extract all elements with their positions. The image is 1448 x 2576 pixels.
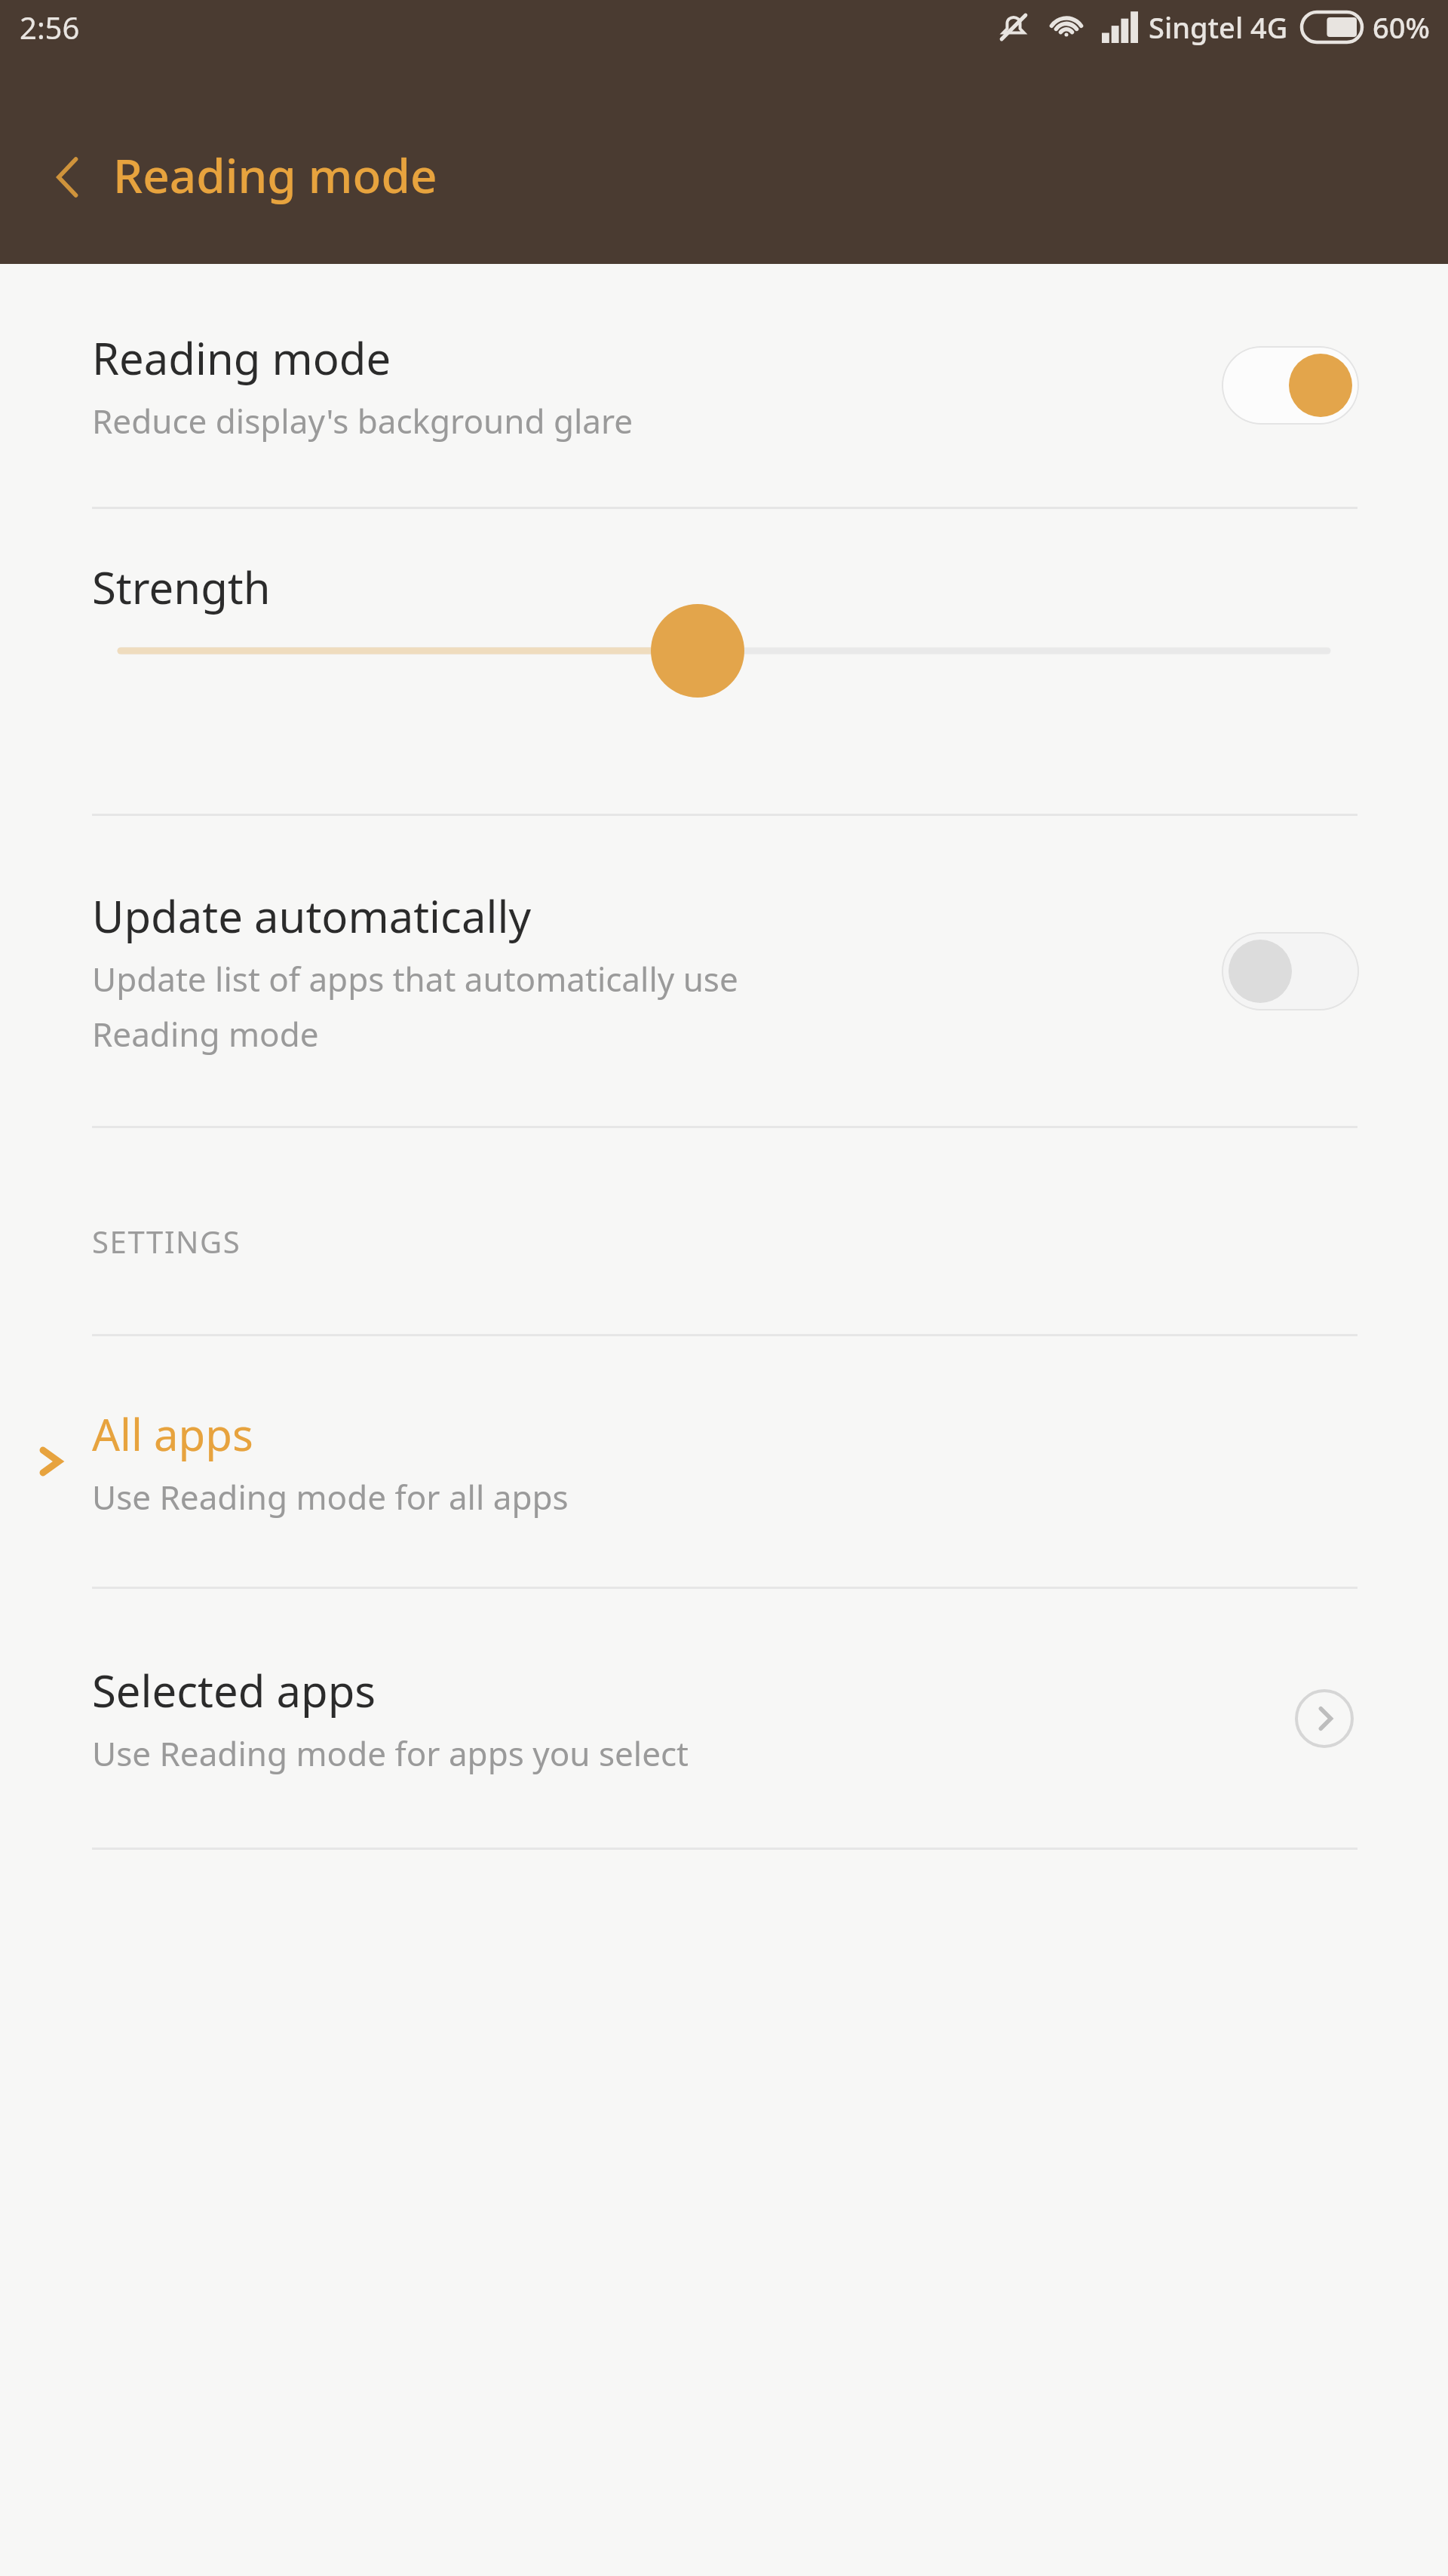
staticText: 60% xyxy=(1373,8,1430,47)
button[interactable]: Selected apps xyxy=(0,1589,1448,1848)
staticText: Reading mode xyxy=(92,328,391,388)
button[interactable]: Back xyxy=(27,136,110,219)
staticText: SETTINGS xyxy=(92,1221,241,1262)
button[interactable]: Strength slider xyxy=(0,509,1448,814)
button[interactable]: All apps xyxy=(0,1336,1448,1587)
staticText: Strength xyxy=(92,557,271,617)
staticText: All apps xyxy=(92,1404,253,1464)
staticText: Reading mode xyxy=(113,143,437,207)
staticText: 2:56 xyxy=(20,7,80,48)
button[interactable]: On xyxy=(1222,346,1359,425)
staticText: Use Reading mode for all apps xyxy=(92,1474,569,1520)
staticText: Update list of apps that automatically u… xyxy=(92,956,738,1056)
staticText: Use Reading mode for apps you select xyxy=(92,1731,689,1776)
staticText: Selected apps xyxy=(92,1661,376,1720)
staticText: Update automatically xyxy=(92,886,531,946)
button[interactable]: Reading mode xyxy=(0,264,1448,507)
button[interactable]: Open selected apps xyxy=(1290,1684,1359,1753)
staticText: Reduce display's background glare xyxy=(92,398,633,443)
button[interactable]: Off xyxy=(1222,932,1359,1010)
button[interactable]: Update automatically xyxy=(0,816,1448,1126)
staticText: Singtel 4G xyxy=(1149,8,1288,47)
